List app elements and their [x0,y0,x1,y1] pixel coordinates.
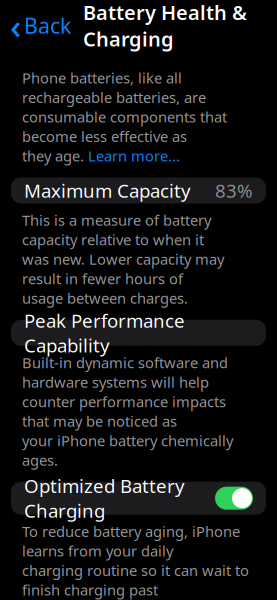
staticText: Back [24,11,71,40]
staticText: Peak Performance Capability [24,308,185,358]
button[interactable]: Maximum Capacity [11,177,266,203]
staticText: Battery Health & Charging [83,0,247,52]
staticText: Learn more... [88,146,180,165]
staticText: charging routine so it can wait to finis… [22,561,249,600]
staticText: consumable components that become less e… [22,107,227,146]
button[interactable]: Optimized Battery Charging [11,482,266,515]
staticText: Optimized Battery Charging [24,473,185,523]
staticText: your iPhone battery chemically ages. [22,431,233,470]
button[interactable]: ‹ [0,8,77,42]
staticText: usage between charges. [22,288,188,308]
button[interactable]: Learn more... [88,146,180,165]
staticText: 83% [215,178,253,203]
staticText: was new. Lower capacity may result in fe… [22,249,224,288]
staticText: Phone batteries, like all rechargeable b… [22,68,206,107]
staticText: counter performance impacts that may be … [22,392,226,431]
staticText: Maximum Capacity [24,178,191,203]
staticText: they age. [22,146,88,165]
staticText: To reduce battery aging, iPhone learns f… [22,522,240,561]
button[interactable]: Peak Performance Capability [11,320,266,346]
staticText: ‹ [10,2,21,48]
staticText: Built-in dynamic software and hardware s… [22,353,228,392]
staticText: This is a measure of battery capacity re… [22,210,211,249]
